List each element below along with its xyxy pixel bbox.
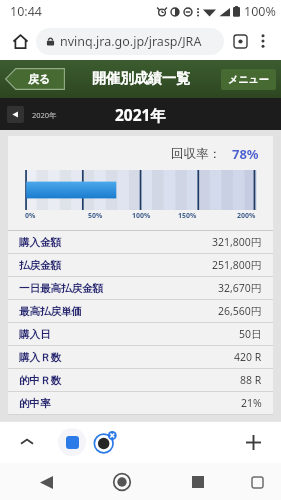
button[interactable]: App shortcut (58, 428, 86, 456)
button[interactable]: Reader mode (229, 30, 252, 53)
staticText: 開催別成績一覧 (92, 70, 190, 88)
staticText: 420 R (234, 350, 262, 364)
button[interactable]: 購入金額 (8, 231, 273, 253)
staticText: 78% (232, 145, 259, 163)
staticText: 購入日 (19, 328, 51, 341)
button[interactable]: Close tab (90, 427, 120, 457)
button[interactable]: 的中率 (8, 392, 273, 414)
button[interactable]: 最高払戻単価 (8, 300, 273, 322)
button[interactable]: 購入Ｒ数 (8, 346, 273, 368)
staticText: 戻る (28, 72, 51, 86)
button[interactable]: Home (105, 465, 139, 499)
staticText: 2021年 (115, 104, 166, 125)
staticText: 100% (244, 3, 276, 20)
staticText: 的中率 (19, 397, 51, 410)
button[interactable]: Home (7, 28, 33, 54)
staticText: 50日 (239, 327, 262, 341)
button[interactable]: Recent apps (181, 465, 215, 499)
staticText: 200% (237, 211, 256, 221)
staticText: メニュー (228, 73, 269, 86)
staticText: 一日最高払戻金額 (19, 282, 103, 295)
staticText: 10:44 (10, 3, 42, 20)
button[interactable]: More options (252, 30, 274, 52)
button[interactable]: 2020年 (7, 106, 57, 123)
staticText: 回収率： (171, 146, 221, 162)
staticText: 32,670円 (218, 281, 262, 295)
staticText: 購入金額 (19, 236, 61, 249)
staticText: 最高払戻単価 (19, 305, 82, 318)
staticText: 0% (25, 211, 36, 221)
button[interactable]: 的中Ｒ数 (8, 369, 273, 391)
staticText: 321,800円 (212, 235, 262, 249)
staticText: 21% (241, 396, 262, 410)
staticText: 購入Ｒ数 (19, 351, 61, 364)
staticText: 2020年 (32, 110, 57, 120)
button[interactable]: メニュー (221, 69, 276, 90)
button[interactable]: Rotate screen (243, 468, 271, 496)
staticText: 的中Ｒ数 (19, 374, 61, 387)
staticText: nvinq.jra.go.jp/jrasp/JRA (60, 33, 202, 50)
button[interactable]: 戻る (5, 68, 65, 90)
button[interactable]: nvinq.jra.go.jp/jrasp/JRA (36, 28, 224, 55)
button[interactable]: 払戻金額 (8, 254, 273, 276)
button[interactable]: Back (29, 465, 63, 499)
staticText: 払戻金額 (19, 259, 61, 272)
button[interactable]: Expand toolbar (12, 427, 42, 457)
staticText: 251,800円 (212, 258, 262, 272)
button[interactable]: 購入日 (8, 323, 273, 345)
staticText: 26,560円 (218, 304, 262, 318)
button[interactable]: New tab (237, 426, 269, 458)
staticText: 50% (88, 211, 103, 221)
staticText: 150% (178, 211, 197, 221)
staticText: 88 R (240, 373, 262, 387)
staticText: 100% (132, 211, 151, 221)
button[interactable]: 一日最高払戻金額 (8, 277, 273, 299)
